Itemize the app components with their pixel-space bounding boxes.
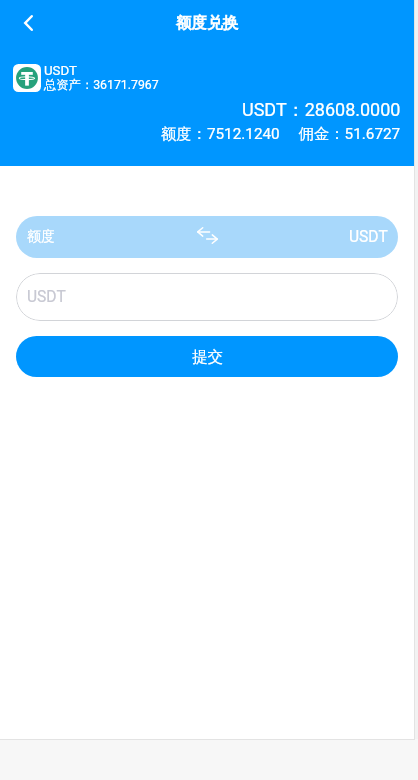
staticText: USDT：28608.0000 [242,99,401,122]
staticText: 提交 [192,347,223,367]
other: Swap direction [197,227,218,244]
staticText: USDT [44,63,78,79]
staticText: USDT [349,228,388,246]
staticText: 总资产：36171.7967 [44,77,159,92]
button[interactable]: 提交 [16,336,398,377]
staticText: 额度：7512.1240 佣金：51.6727 [161,124,401,143]
button[interactable]: USDT [16,273,398,321]
staticText: USDT [27,288,66,306]
button[interactable]: 额度 [16,216,398,258]
button[interactable]: Back [10,5,46,41]
staticText: 额度兑换 [176,13,238,33]
staticText: 额度 [27,228,55,246]
